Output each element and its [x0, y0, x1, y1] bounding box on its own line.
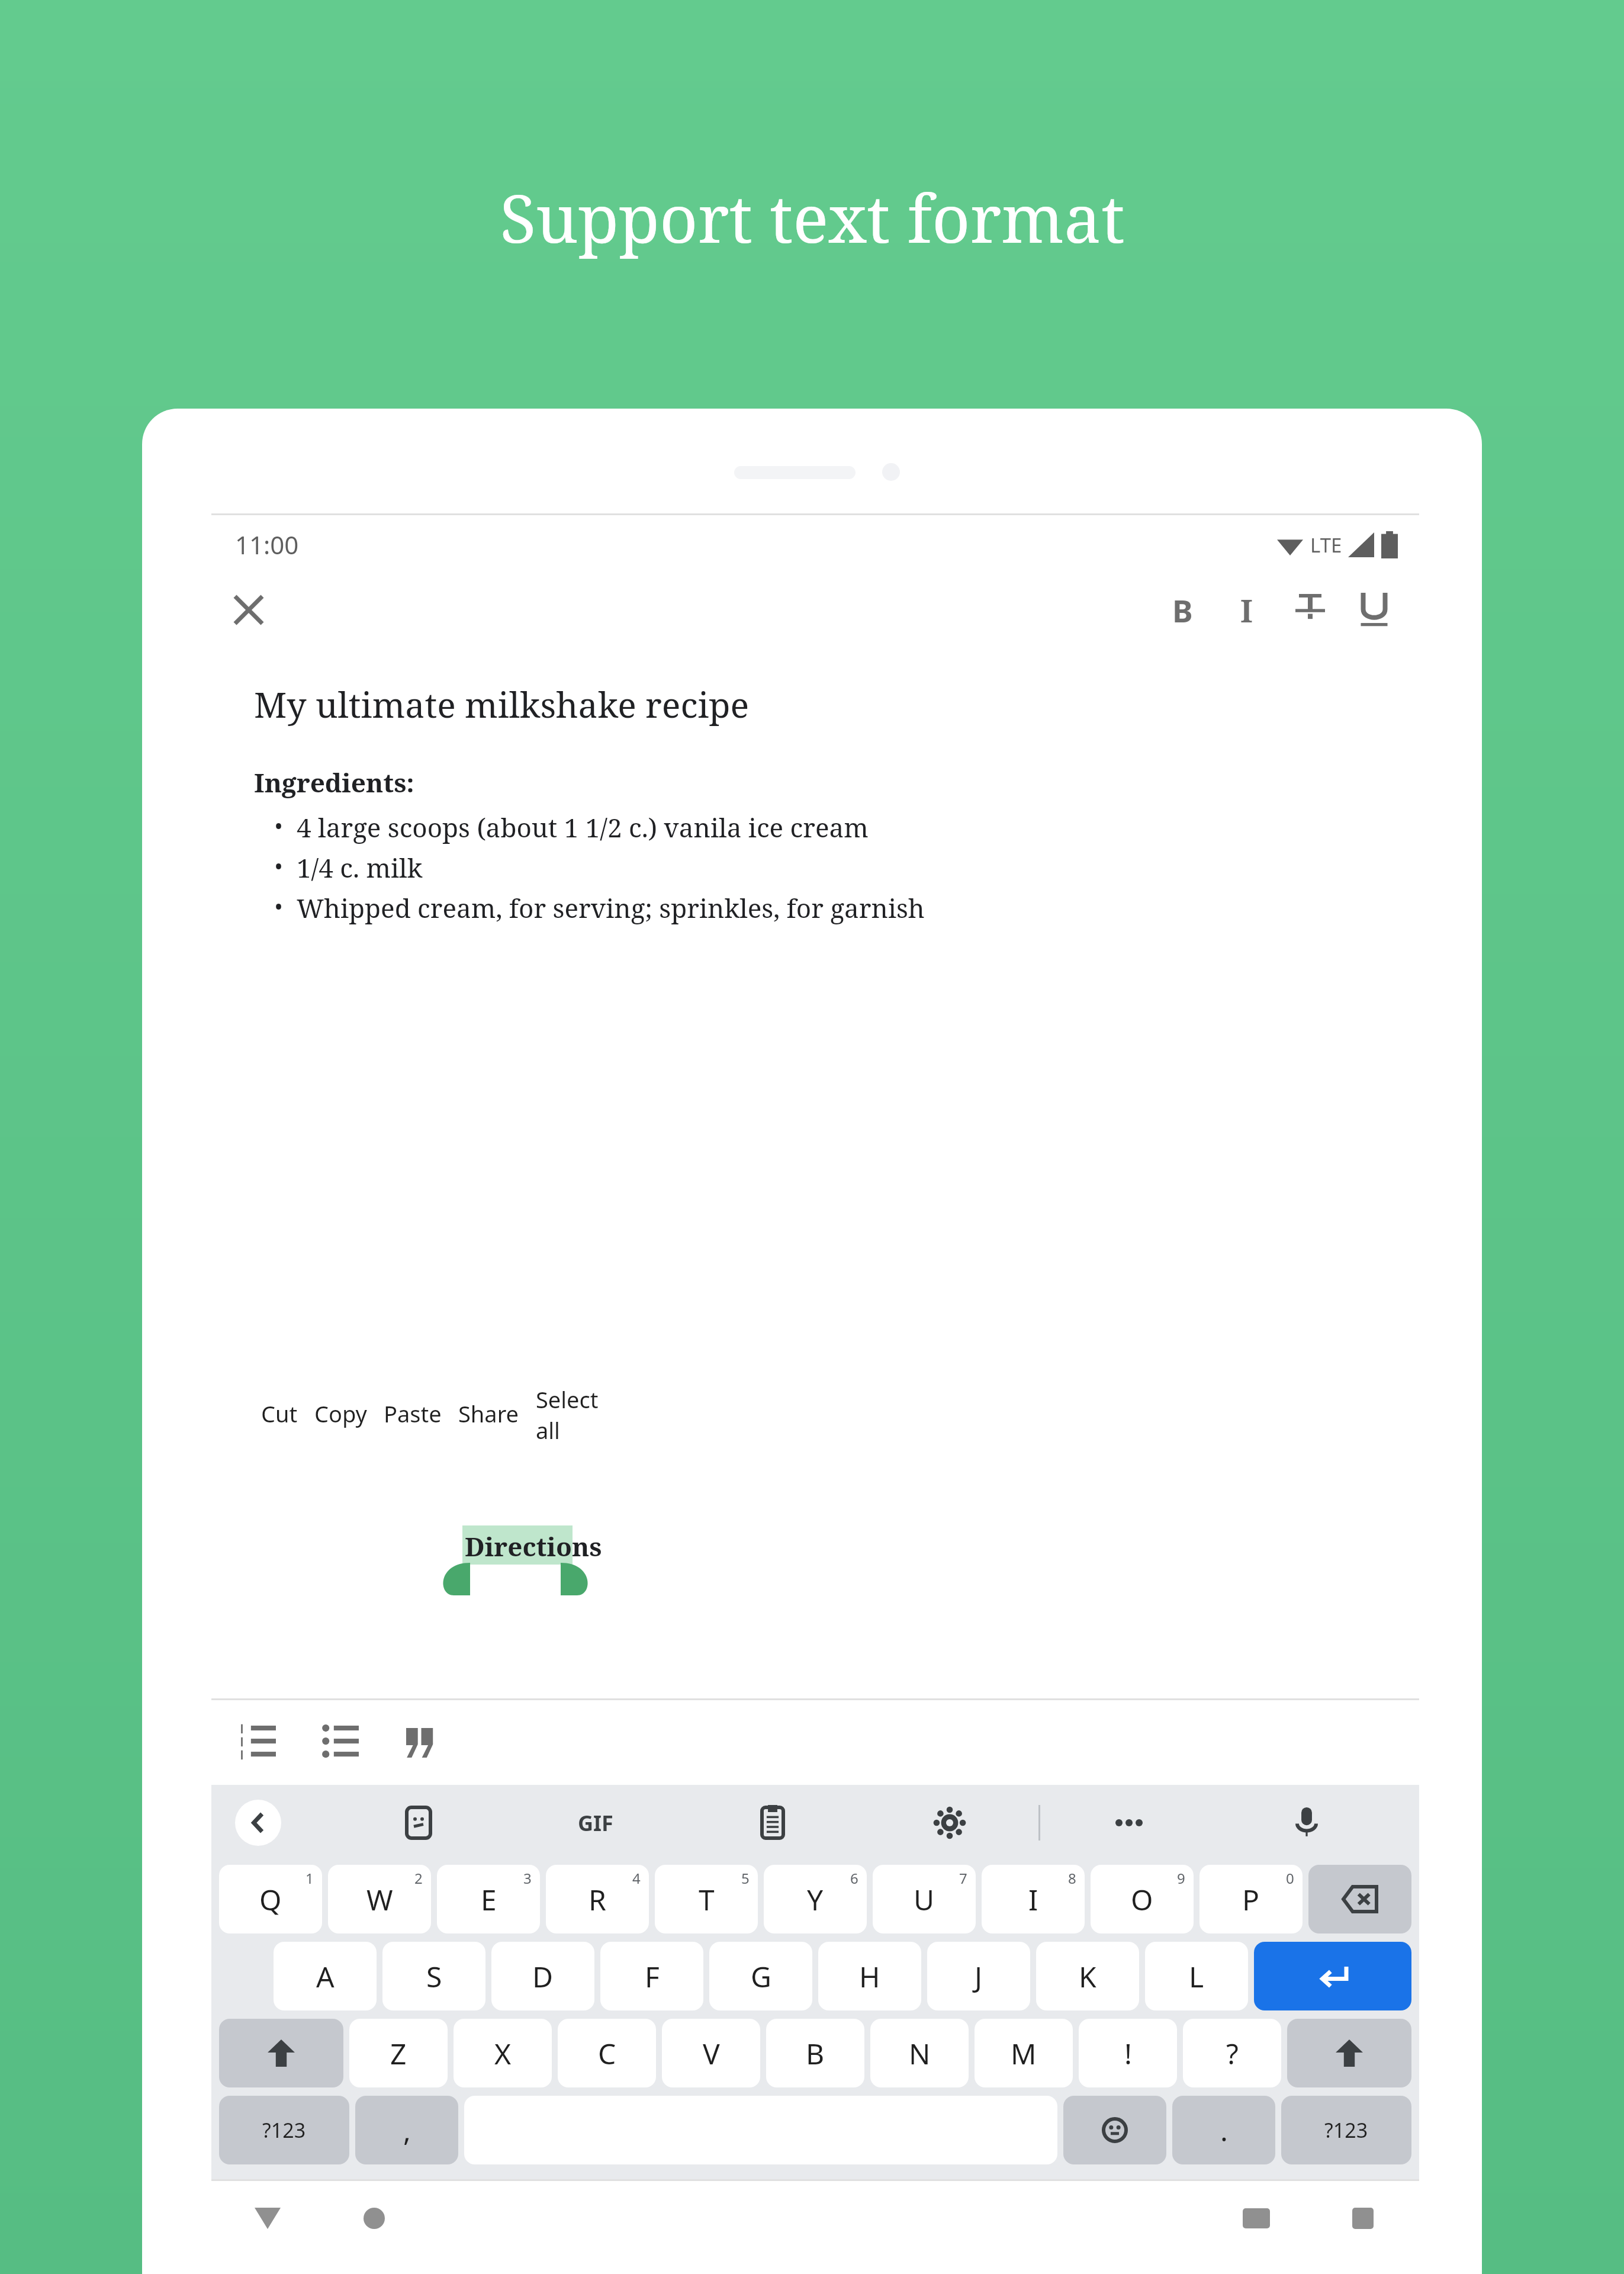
button[interactable]: A [274, 1942, 377, 2010]
button[interactable]: L [1145, 1942, 1248, 2010]
staticText: K [1079, 1957, 1096, 1996]
staticText: P [1242, 1880, 1260, 1919]
staticText: B [1172, 589, 1193, 631]
button[interactable]: E [437, 1865, 540, 1933]
button[interactable]: Select all [536, 1384, 614, 1443]
button[interactable]: Back [235, 1800, 281, 1846]
button[interactable]: C [558, 2019, 656, 2087]
staticText: D [532, 1957, 554, 1996]
staticText: 3 [523, 1868, 532, 1888]
button[interactable]: T [655, 1865, 758, 1933]
button[interactable]: Quote [394, 1713, 453, 1772]
button[interactable]: R [546, 1865, 649, 1933]
staticText: ? [1226, 2034, 1239, 2073]
staticText: X [494, 2034, 512, 2073]
staticText: 4 large scoops (about 1 1/2 c.) vanila i… [297, 810, 869, 845]
staticText: LTE [1310, 532, 1342, 558]
button[interactable]: Numbered list [228, 1713, 287, 1772]
button[interactable]: Italic [1214, 580, 1278, 640]
button[interactable]: Home [348, 2192, 401, 2245]
button[interactable]: Share [458, 1398, 519, 1429]
button[interactable]: Strikethrough [1278, 580, 1342, 640]
staticText: 5 [741, 1868, 750, 1888]
button[interactable]: I [982, 1865, 1085, 1933]
button[interactable]: Cut [261, 1398, 298, 1429]
staticText: 4 [632, 1868, 641, 1888]
button[interactable]: D [491, 1942, 594, 2010]
button[interactable]: More [1101, 1794, 1157, 1851]
staticText: I [1240, 589, 1253, 631]
button[interactable]: O [1091, 1865, 1194, 1933]
staticText: Paste [384, 1398, 442, 1429]
staticText: F [645, 1957, 660, 1996]
button[interactable]: J [927, 1942, 1030, 2010]
button[interactable]: F [600, 1942, 703, 2010]
button[interactable]: ! [1079, 2019, 1177, 2087]
button[interactable]: Stickers [390, 1794, 447, 1851]
staticText: 8 [1068, 1868, 1076, 1888]
button[interactable]: U [873, 1865, 976, 1933]
staticText: W [366, 1880, 393, 1919]
button[interactable]: ?123 [1281, 2096, 1411, 2164]
button[interactable]: GIF [567, 1798, 624, 1848]
button[interactable]: G [709, 1942, 812, 2010]
button[interactable]: Copy [314, 1398, 367, 1429]
staticText: Ingredients: [254, 765, 414, 800]
button[interactable]: W [328, 1865, 431, 1933]
button[interactable]: Keyboard [1230, 2192, 1283, 2245]
staticText: E [481, 1880, 497, 1919]
staticText: My ultimate milkshake recipe [254, 680, 750, 728]
button[interactable]: Backspace [1308, 1865, 1411, 1933]
button[interactable]: ?123 [219, 2096, 349, 2164]
button[interactable]: Shift [219, 2019, 343, 2087]
staticText: • [274, 810, 284, 841]
button[interactable]: V [662, 2019, 760, 2087]
staticText: B [806, 2034, 825, 2073]
button[interactable]: Underline [1342, 580, 1406, 640]
button[interactable]: Settings [921, 1794, 978, 1851]
staticText: ?123 [262, 2116, 306, 2144]
button[interactable]: Z [349, 2019, 448, 2087]
staticText: Cut [261, 1398, 298, 1429]
button[interactable]: . [1172, 2096, 1275, 2164]
button[interactable]: X [454, 2019, 552, 2087]
staticText: GIF [578, 1809, 613, 1838]
button[interactable]: P [1199, 1865, 1303, 1933]
staticText: S [426, 1957, 442, 1996]
staticText: Whipped cream, for serving; sprinkles, f… [297, 890, 925, 926]
staticText: J [975, 1957, 983, 1996]
button[interactable]: N [870, 2019, 969, 2087]
staticText: ! [1124, 2034, 1132, 2073]
staticText: G [751, 1957, 771, 1996]
button[interactable]: Emoji [1063, 2096, 1166, 2164]
button[interactable]: , [355, 2096, 458, 2164]
button[interactable]: Clipboard [744, 1794, 801, 1851]
button[interactable]: Voice input [1278, 1794, 1335, 1851]
button[interactable]: S [382, 1942, 485, 2010]
button[interactable]: Paste [384, 1398, 442, 1429]
button[interactable]: Close [223, 584, 274, 635]
button[interactable]: ? [1183, 2019, 1281, 2087]
button[interactable]: K [1036, 1942, 1139, 2010]
staticText: Q [259, 1880, 282, 1919]
button[interactable]: Q [219, 1865, 322, 1933]
staticText: Z [390, 2034, 407, 2073]
staticText: • [274, 850, 284, 882]
button[interactable]: Y [764, 1865, 867, 1933]
staticText: 11:00 [235, 528, 299, 561]
button[interactable]: Shift [1287, 2019, 1411, 2087]
button[interactable]: Enter [1254, 1942, 1411, 2010]
button[interactable]: Bold [1150, 580, 1214, 640]
button[interactable]: Back [241, 2192, 294, 2245]
button[interactable]: M [975, 2019, 1073, 2087]
button[interactable]: H [818, 1942, 921, 2010]
staticText: Select all [536, 1384, 614, 1443]
staticText: Share [458, 1398, 519, 1429]
button[interactable]: Bulleted list [311, 1713, 370, 1772]
button[interactable]: B [766, 2019, 864, 2087]
button[interactable]: Recents [1336, 2192, 1390, 2245]
staticText: H [859, 1957, 880, 1996]
staticText: Y [807, 1880, 824, 1919]
staticText: M [1011, 2034, 1037, 2073]
